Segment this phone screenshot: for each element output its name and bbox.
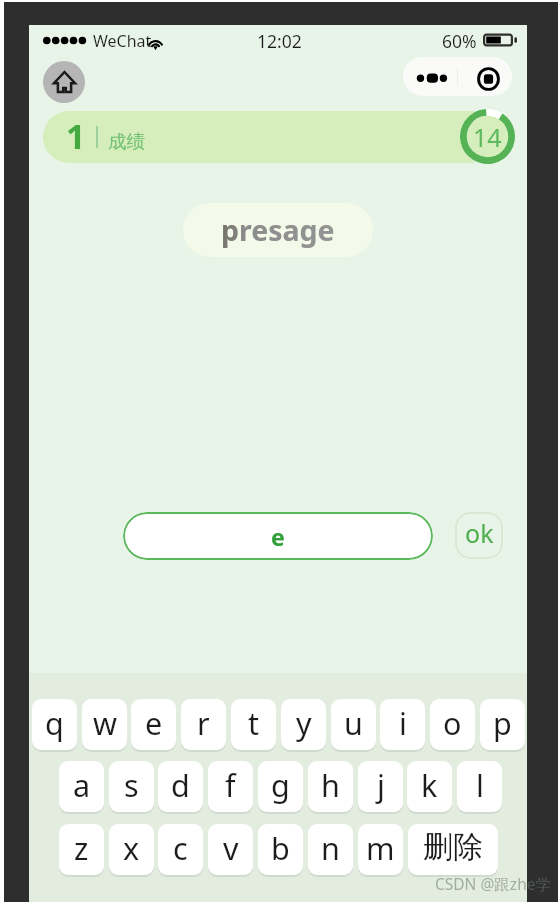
button[interactable]: t	[231, 699, 276, 750]
staticText: s	[124, 764, 139, 806]
staticText: b	[271, 827, 290, 869]
button[interactable]: o	[430, 699, 475, 750]
button[interactable]: j	[358, 761, 403, 812]
button[interactable]: b	[258, 824, 303, 875]
button[interactable]: ok	[455, 512, 503, 559]
staticText: o	[443, 702, 462, 744]
button[interactable]: w	[82, 699, 127, 750]
staticText: WeChat	[93, 30, 152, 52]
button[interactable]: Home	[43, 61, 85, 103]
button[interactable]: 删除	[408, 824, 498, 875]
staticText: e	[271, 521, 285, 552]
staticText: t	[248, 702, 260, 744]
staticText: h	[321, 764, 340, 806]
button[interactable]: n	[308, 824, 353, 875]
staticText: c	[173, 827, 188, 869]
button[interactable]: presage	[183, 203, 373, 257]
staticText: 12:02	[257, 29, 302, 53]
staticText: m	[366, 827, 395, 869]
button[interactable]: r	[181, 699, 226, 750]
staticText: y	[296, 702, 312, 744]
button[interactable]: y	[281, 699, 326, 750]
button[interactable]: e	[123, 512, 433, 560]
staticText: d	[171, 764, 190, 806]
staticText: 60%	[442, 29, 477, 53]
button[interactable]: g	[258, 761, 303, 812]
button[interactable]: l	[457, 761, 502, 812]
staticText: j	[377, 764, 385, 806]
button[interactable]: m	[358, 824, 403, 875]
button[interactable]: d	[158, 761, 203, 812]
staticText: a	[73, 764, 91, 806]
button[interactable]: i	[380, 699, 425, 750]
button[interactable]: c	[158, 824, 203, 875]
button[interactable]: h	[308, 761, 353, 812]
button[interactable]: f	[208, 761, 253, 812]
button[interactable]: e	[131, 699, 176, 750]
staticText: 删除	[423, 828, 483, 866]
button[interactable]: Close mini program	[458, 57, 512, 96]
button[interactable]: Remaining 14	[460, 109, 515, 164]
button[interactable]: k	[407, 761, 452, 812]
button[interactable]	[43, 111, 474, 163]
staticText: q	[45, 702, 64, 744]
staticText: presage	[221, 211, 335, 250]
staticText: CSDN @跟zhe学	[435, 873, 551, 894]
staticText: f	[225, 764, 236, 806]
button[interactable]: x	[109, 824, 154, 875]
staticText: v	[223, 827, 239, 869]
staticText: 成绩	[108, 130, 145, 153]
staticText: ok	[465, 516, 494, 550]
staticText: x	[123, 827, 140, 869]
button[interactable]: More options	[403, 57, 457, 96]
staticText: p	[493, 702, 512, 744]
staticText: 1	[66, 113, 86, 159]
button[interactable]: u	[331, 699, 376, 750]
staticText: u	[344, 702, 363, 744]
staticText: k	[421, 764, 438, 806]
button[interactable]: q	[32, 699, 77, 750]
staticText: n	[321, 827, 340, 869]
button[interactable]: s	[109, 761, 154, 812]
button[interactable]: p	[480, 699, 525, 750]
staticText: l	[476, 764, 484, 806]
staticText: e	[145, 702, 163, 744]
staticText: g	[271, 764, 290, 806]
staticText: r	[197, 702, 210, 744]
staticText: z	[74, 827, 89, 869]
staticText: 14	[473, 120, 502, 154]
staticText: w	[93, 702, 117, 744]
button[interactable]: v	[208, 824, 253, 875]
button[interactable]: a	[59, 761, 104, 812]
button[interactable]: z	[59, 824, 104, 875]
staticText: i	[399, 702, 407, 744]
